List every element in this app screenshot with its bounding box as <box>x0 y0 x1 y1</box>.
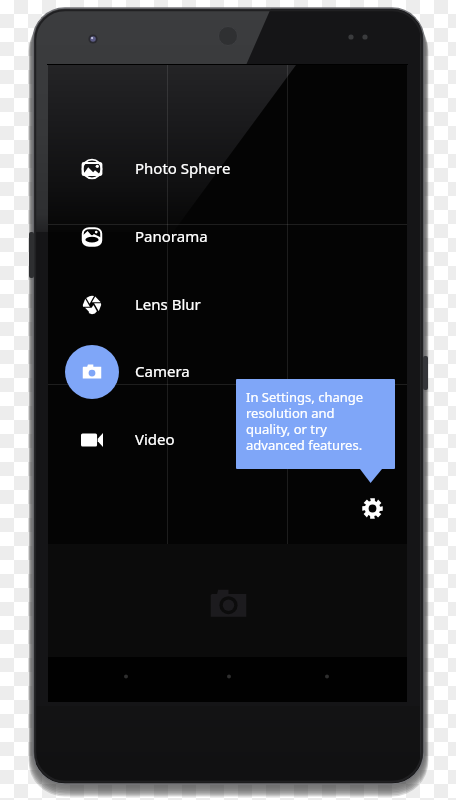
staticText: Lens Blur <box>135 294 201 314</box>
button[interactable]: Video <box>64 412 264 468</box>
staticText: Video <box>135 429 175 449</box>
staticText: In Settings, change resolution and quali… <box>246 388 364 454</box>
staticText: Camera <box>135 361 190 381</box>
button[interactable]: Panorama <box>64 209 264 265</box>
button[interactable]: Settings <box>348 484 396 532</box>
button[interactable]: Lens Blur <box>64 277 264 333</box>
button[interactable]: Camera <box>64 344 264 400</box>
button[interactable]: In Settings, change resolution and quali… <box>236 379 395 469</box>
button[interactable]: Shutter <box>197 570 259 632</box>
button[interactable]: Photo Sphere <box>64 141 264 197</box>
staticText: Photo Sphere <box>135 158 231 178</box>
staticText: Panorama <box>135 226 208 246</box>
